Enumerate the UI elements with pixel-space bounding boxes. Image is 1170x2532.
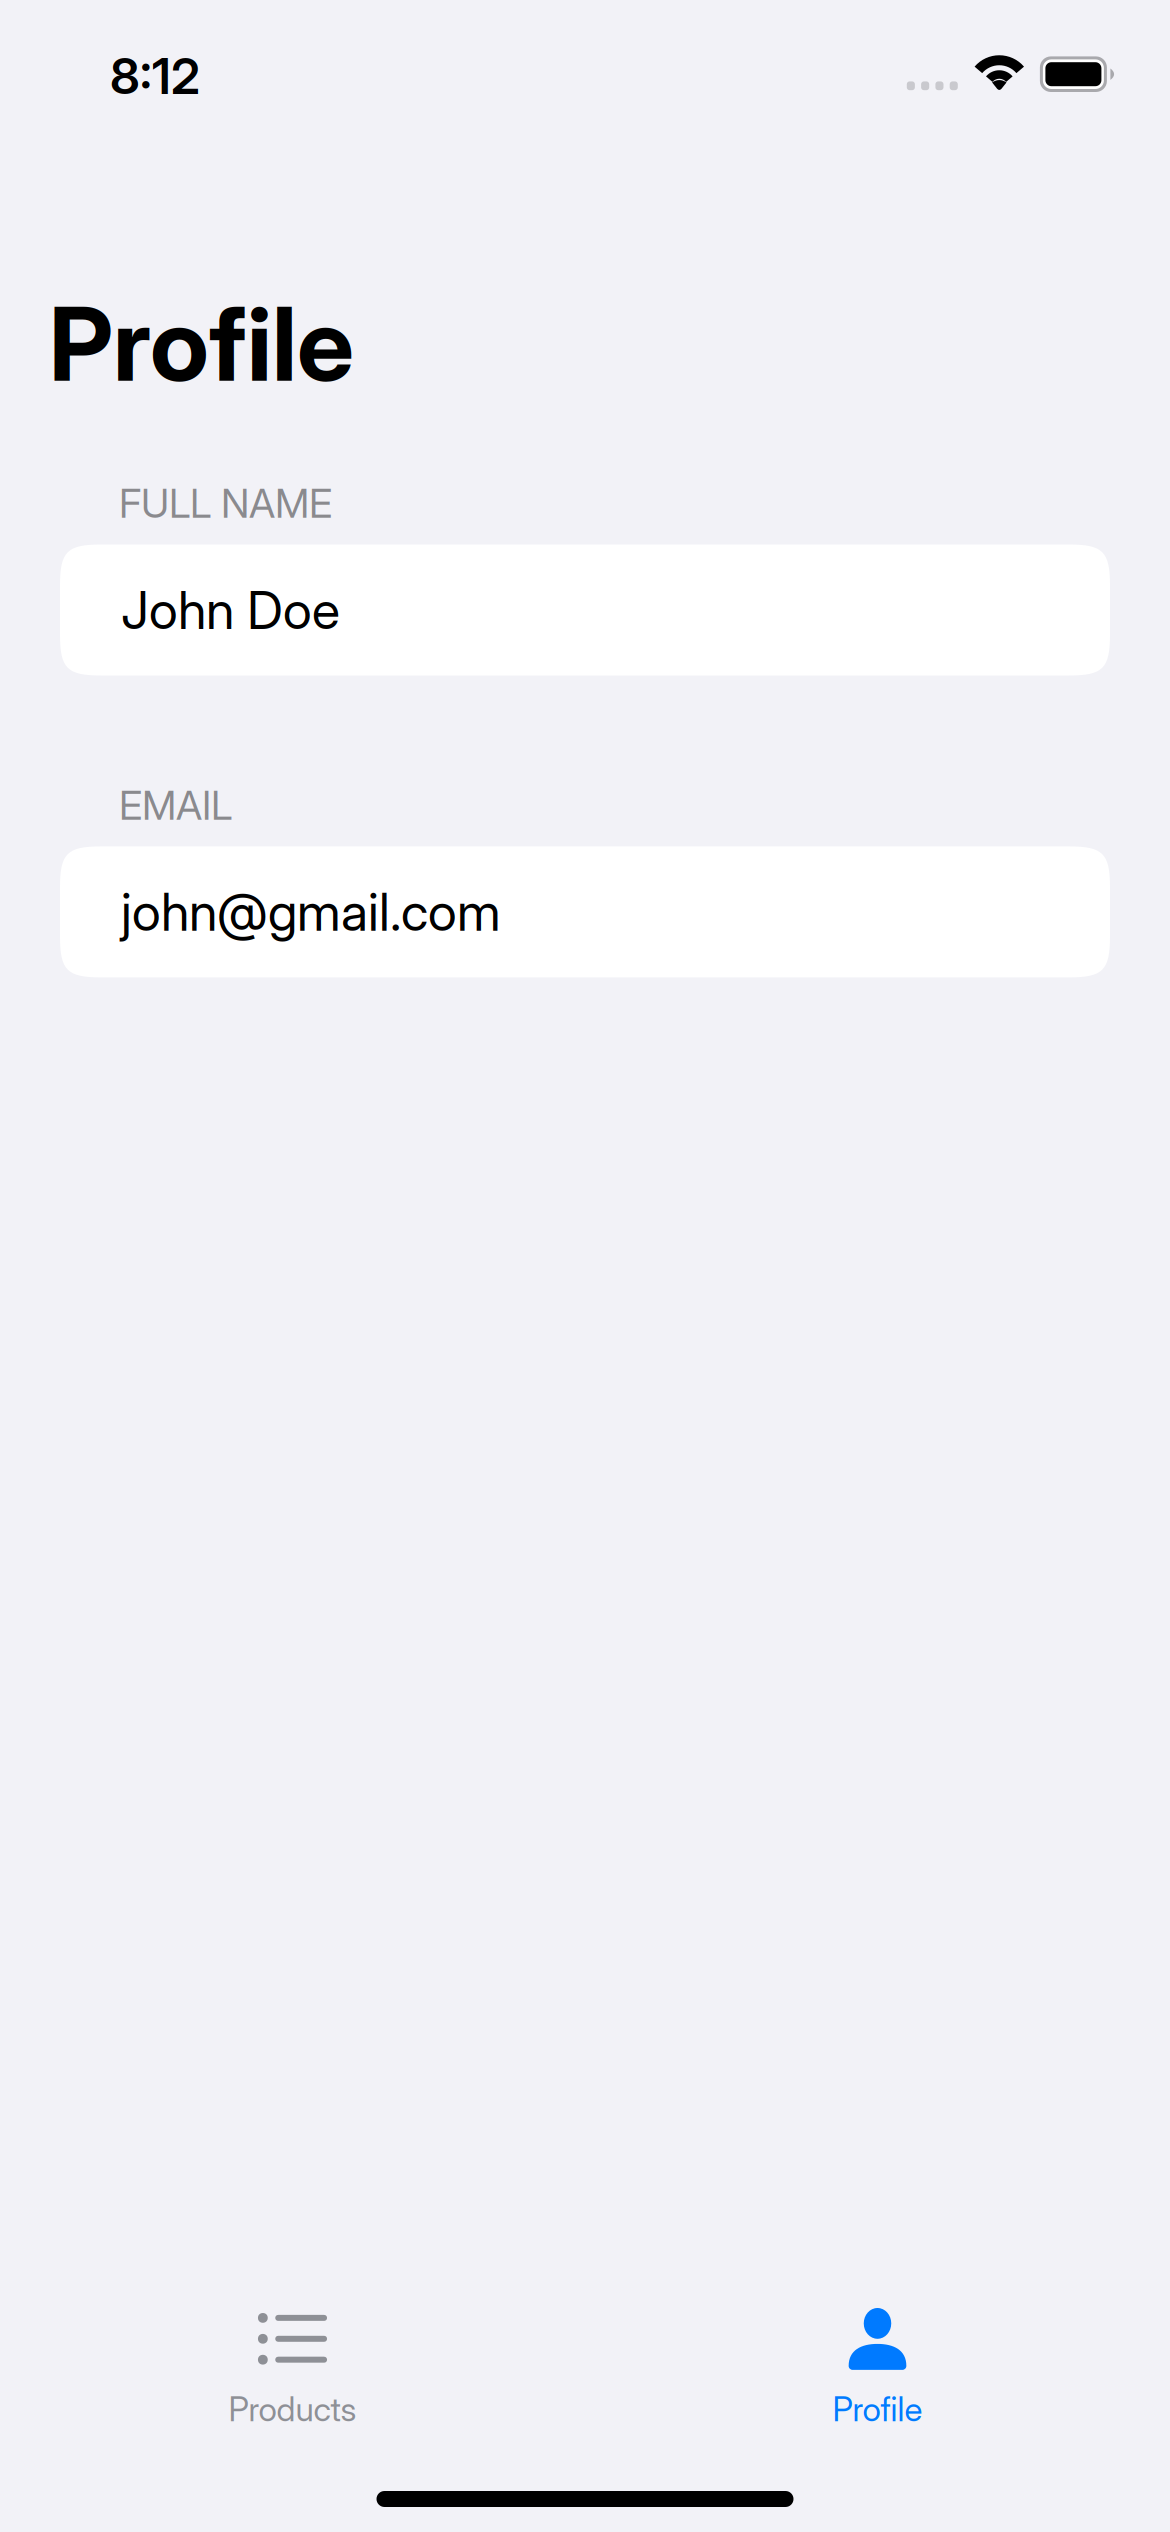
staticText: Profile: [832, 2389, 922, 2429]
button[interactable]: John Doe: [60, 544, 1110, 675]
button[interactable]: Products: [0, 2299, 585, 2409]
staticText: EMAIL: [119, 781, 232, 829]
staticText: Products: [228, 2389, 356, 2429]
button[interactable]: john@gmail.com: [60, 846, 1110, 977]
staticText: john@gmail.com: [121, 880, 501, 943]
button[interactable]: Profile: [585, 2299, 1170, 2409]
staticText: Profile: [49, 282, 354, 405]
staticText: John Doe: [121, 578, 340, 641]
staticText: 8:12: [110, 46, 200, 106]
staticText: FULL NAME: [119, 479, 332, 527]
